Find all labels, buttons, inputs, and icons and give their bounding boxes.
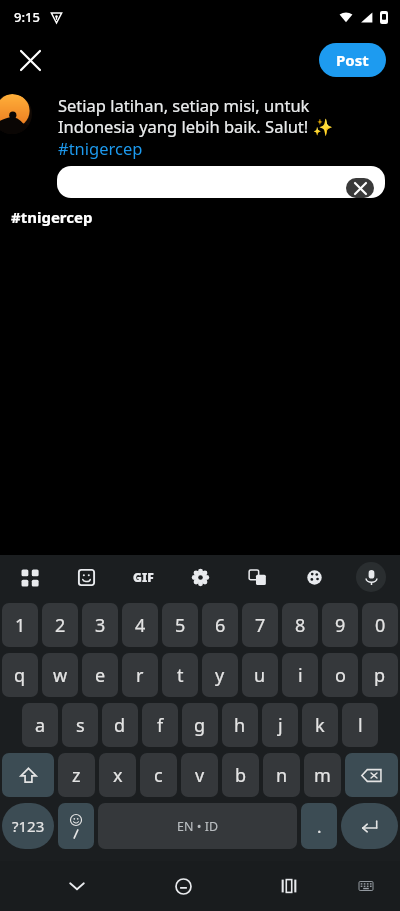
button[interactable]: x (99, 753, 136, 797)
button[interactable]: 9 (322, 603, 358, 647)
button[interactable]: 3 (82, 603, 118, 647)
button[interactable]: 6 (202, 603, 238, 647)
staticText: z (72, 763, 81, 788)
button[interactable]: 7 (242, 603, 278, 647)
button[interactable]: 1 (2, 603, 38, 647)
staticText: Setiap latihan, setiap misi, untuk Indon… (58, 94, 388, 160)
button[interactable]: t (162, 653, 198, 697)
button[interactable]: ?123 (2, 803, 54, 849)
staticText: a (35, 713, 46, 738)
button[interactable]: f (142, 703, 178, 747)
button[interactable]: e (82, 653, 118, 697)
button[interactable]: #tnigercep (0, 198, 400, 236)
button[interactable]: 5 (162, 603, 198, 647)
button[interactable]: Stickers (71, 562, 101, 592)
staticText: e (95, 663, 106, 688)
staticText: o (335, 663, 346, 688)
staticText: t (177, 663, 184, 688)
button[interactable]: j (262, 703, 298, 747)
staticText: . (317, 815, 322, 838)
button[interactable]: z (58, 753, 95, 797)
button[interactable]: Close (10, 40, 50, 80)
staticText: 8 (295, 613, 306, 638)
button[interactable]: s (62, 703, 98, 747)
staticText: f (157, 713, 164, 738)
button[interactable]: Remove media (346, 178, 374, 198)
staticText: 9 (335, 613, 346, 638)
staticText: 6 (215, 613, 226, 638)
button[interactable]: n (263, 753, 300, 797)
staticText: 1 (15, 613, 26, 638)
staticText: g (194, 713, 206, 738)
button[interactable]: q (2, 653, 38, 697)
staticText: m (314, 763, 331, 788)
staticText: Post (336, 50, 369, 70)
button[interactable]: Voice input (356, 562, 386, 592)
staticText: s (76, 713, 85, 738)
button[interactable]: g (182, 703, 218, 747)
button[interactable]: Home (161, 864, 205, 908)
button[interactable]: m (304, 753, 341, 797)
button[interactable]: 4 (122, 603, 158, 647)
button[interactable]: a (22, 703, 58, 747)
staticText: i (298, 663, 303, 688)
button[interactable]: v (181, 753, 218, 797)
staticText: w (53, 663, 68, 688)
button[interactable] (57, 166, 385, 198)
button[interactable]: b (222, 753, 259, 797)
staticText: r (136, 663, 144, 688)
button[interactable]: 0 (362, 603, 398, 647)
staticText: k (315, 713, 325, 738)
staticText: EN • ID (177, 818, 219, 835)
button[interactable]: Enter (341, 803, 398, 849)
staticText: v (195, 763, 205, 788)
staticText: #tnigercep (11, 207, 93, 227)
button[interactable]: y (202, 653, 238, 697)
staticText: 0 (375, 613, 386, 638)
button[interactable]: c (140, 753, 177, 797)
button[interactable]: p (362, 653, 398, 697)
staticText: b (235, 763, 247, 788)
button[interactable]: w (42, 653, 78, 697)
button[interactable]: Emoji (58, 803, 94, 849)
button[interactable]: o (322, 653, 358, 697)
button[interactable]: d (102, 703, 138, 747)
button[interactable]: l (342, 703, 378, 747)
button[interactable]: Shift (2, 753, 54, 797)
button[interactable]: Theme (299, 562, 329, 592)
button[interactable]: EN • ID (98, 803, 297, 849)
staticText: x (113, 763, 123, 788)
staticText: q (14, 663, 26, 688)
button[interactable]: Backspace (345, 753, 398, 797)
button[interactable]: Translate (242, 562, 272, 592)
button[interactable]: Post (319, 43, 386, 77)
button[interactable]: Hide keyboard (55, 864, 99, 908)
staticText: 4 (135, 613, 146, 638)
staticText: c (154, 763, 163, 788)
button[interactable]: GIF (128, 562, 158, 592)
staticText: 5 (175, 613, 186, 638)
staticText: u (254, 663, 266, 688)
staticText: 7 (255, 613, 266, 638)
staticText: 3 (95, 613, 106, 638)
staticText: GIF (133, 569, 154, 585)
button[interactable]: 2 (42, 603, 78, 647)
staticText: l (358, 713, 363, 738)
button[interactable]: h (222, 703, 258, 747)
button[interactable]: Apps (14, 562, 44, 592)
staticText: 2 (55, 613, 66, 638)
button[interactable]: Switch keyboard (347, 867, 385, 905)
button[interactable] (0, 94, 32, 134)
button[interactable]: i (282, 653, 318, 697)
staticText: j (278, 713, 283, 738)
staticText: d (114, 713, 126, 738)
button[interactable]: r (122, 653, 158, 697)
button[interactable]: 8 (282, 603, 318, 647)
staticText: p (374, 663, 386, 688)
staticText: y (215, 663, 225, 688)
button[interactable]: Recent apps (267, 864, 311, 908)
button[interactable]: . (301, 803, 337, 849)
button[interactable]: u (242, 653, 278, 697)
button[interactable]: Settings (185, 562, 215, 592)
button[interactable]: k (302, 703, 338, 747)
